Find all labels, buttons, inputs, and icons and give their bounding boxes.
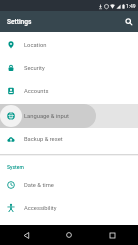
button[interactable]: Home	[52, 225, 86, 245]
button[interactable]: Accounts	[0, 79, 138, 103]
button[interactable]: Search	[119, 11, 138, 32]
staticText: Settings	[7, 18, 32, 26]
staticText: 1:49	[126, 3, 136, 9]
button[interactable]: Accessibility	[0, 196, 138, 220]
button[interactable]: Location	[0, 33, 138, 57]
staticText: Language & input	[24, 113, 69, 120]
staticText: Backup & reset	[24, 136, 63, 143]
button[interactable]: Back	[9, 225, 43, 245]
staticText: Date & time	[24, 182, 54, 189]
button[interactable]: Security	[0, 56, 138, 80]
staticText: Accounts	[24, 88, 49, 95]
staticText: Accessibility	[24, 205, 57, 212]
button[interactable]: Recent apps	[95, 225, 129, 245]
button[interactable]: Date & time	[0, 173, 138, 197]
staticText: Location	[24, 42, 47, 49]
button[interactable]: Language & input	[0, 104, 138, 128]
staticText: Security	[24, 65, 45, 72]
button[interactable]: Backup & reset	[0, 127, 138, 151]
staticText: System	[7, 164, 24, 170]
